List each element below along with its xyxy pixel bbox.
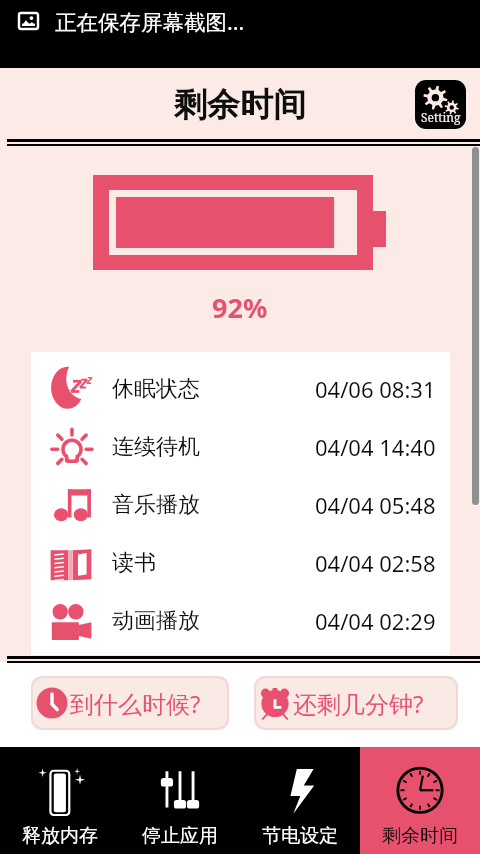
- button[interactable]: 停止应用: [120, 747, 240, 854]
- staticText: 读书: [112, 549, 156, 577]
- button[interactable]: 到什么时候?: [33, 678, 227, 728]
- button[interactable]: 还剩几分钟?: [256, 678, 456, 728]
- staticText: 到什么时候?: [70, 687, 201, 720]
- staticText: 92%: [212, 289, 268, 326]
- staticText: 04/04 02:58: [315, 548, 436, 578]
- staticText: 剩余时间: [174, 84, 306, 126]
- staticText: 正在保存屏幕截图...: [55, 7, 245, 35]
- staticText: 04/04 02:29: [315, 606, 436, 636]
- staticText: 剩余时间: [382, 824, 458, 848]
- button[interactable]: 读书: [31, 534, 450, 592]
- staticText: 还剩几分钟?: [293, 687, 424, 720]
- staticText: 04/06 08:31: [315, 374, 436, 404]
- button[interactable]: Setting: [415, 80, 466, 129]
- button[interactable]: 释放内存: [0, 747, 120, 854]
- staticText: 04/04 14:40: [315, 432, 436, 462]
- staticText: Setting: [421, 109, 461, 125]
- staticText: 休眠状态: [112, 375, 200, 403]
- button[interactable]: 剩余时间: [360, 747, 480, 854]
- button[interactable]: 音乐播放: [31, 476, 450, 534]
- staticText: 动画播放: [112, 607, 200, 635]
- staticText: 停止应用: [142, 824, 218, 848]
- staticText: 音乐播放: [112, 491, 200, 519]
- staticText: 节电设定: [262, 824, 338, 848]
- button[interactable]: 休眠状态: [31, 360, 450, 418]
- button[interactable]: 连续待机: [31, 418, 450, 476]
- button[interactable]: 动画播放: [31, 592, 450, 650]
- staticText: 04/04 05:48: [315, 490, 436, 520]
- button[interactable]: 节电设定: [240, 747, 360, 854]
- staticText: 连续待机: [112, 433, 200, 461]
- staticText: 释放内存: [22, 824, 98, 848]
